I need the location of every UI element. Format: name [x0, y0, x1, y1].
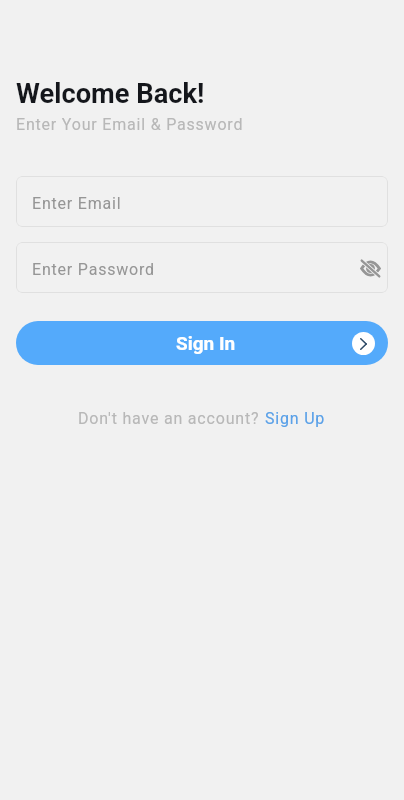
staticText: Enter Your Email & Password	[16, 115, 244, 134]
staticText: Welcome Back!	[16, 78, 205, 110]
button[interactable]: Sign Up	[265, 409, 326, 428]
button[interactable]: Enter Password	[16, 242, 388, 293]
button[interactable]: Sign In	[16, 321, 388, 365]
staticText: Don't have an account?	[78, 409, 265, 428]
staticText: Enter Password	[32, 260, 155, 279]
button[interactable]: Enter Email	[16, 176, 388, 227]
staticText: Sign Up	[265, 409, 326, 428]
staticText: Enter Email	[32, 194, 122, 213]
button[interactable]: Show password	[354, 252, 386, 284]
staticText: Sign In	[176, 332, 236, 354]
